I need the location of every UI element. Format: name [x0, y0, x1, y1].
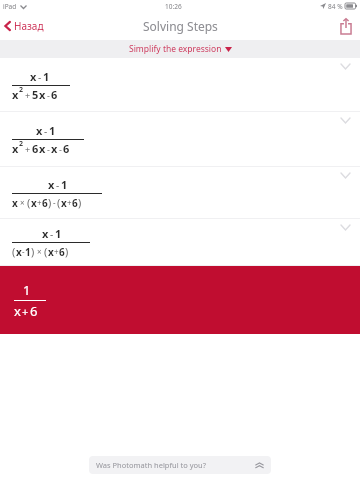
staticText: x: [48, 177, 55, 192]
staticText: ): [48, 195, 52, 210]
staticText: Назад: [14, 19, 44, 33]
staticText: (: [12, 244, 16, 259]
staticText: -: [47, 143, 50, 155]
staticText: +: [67, 197, 72, 208]
staticText: x: [14, 302, 21, 320]
staticText: ): [65, 244, 69, 259]
button[interactable]: Share: [332, 14, 360, 38]
staticText: 1: [25, 245, 31, 259]
staticText: -: [22, 246, 25, 257]
staticText: 10:26: [165, 2, 182, 11]
staticText: (: [57, 195, 61, 210]
staticText: 6: [32, 141, 39, 156]
button[interactable]: x: [0, 112, 360, 167]
staticText: (: [27, 195, 31, 210]
button[interactable]: Simplify the expression: [0, 40, 360, 58]
button[interactable]: x: [0, 58, 360, 112]
staticText: x: [36, 123, 43, 138]
staticText: 1: [61, 177, 68, 192]
staticText: x: [16, 245, 22, 259]
staticText: +: [54, 246, 59, 257]
staticText: x: [39, 87, 46, 102]
button[interactable]: x: [0, 167, 360, 219]
staticText: 6: [42, 196, 48, 210]
button[interactable]: x: [0, 219, 360, 266]
staticText: (: [44, 244, 48, 259]
staticText: +: [25, 89, 31, 101]
staticText: 6: [59, 245, 65, 259]
staticText: 6: [51, 87, 58, 102]
staticText: x: [30, 69, 37, 84]
staticText: iPad: [3, 2, 17, 11]
staticText: 2: [19, 85, 24, 95]
staticText: -: [44, 124, 48, 138]
staticText: 6: [30, 302, 38, 320]
button[interactable]: Expand step: [341, 118, 350, 123]
staticText: -: [47, 89, 50, 101]
staticText: 84 %: [328, 2, 343, 11]
staticText: 2: [19, 139, 24, 149]
staticText: x: [12, 87, 19, 102]
staticText: ×: [20, 197, 25, 208]
staticText: x: [51, 141, 58, 156]
staticText: -: [53, 197, 56, 208]
staticText: -: [50, 227, 54, 241]
staticText: Simplify the expression: [129, 43, 222, 55]
button[interactable]: Назад: [0, 15, 52, 37]
staticText: Solving Steps: [143, 18, 218, 34]
staticText: 1: [55, 226, 62, 241]
staticText: 1: [43, 69, 50, 84]
staticText: -: [38, 70, 42, 84]
staticText: 1: [23, 281, 31, 299]
staticText: ×: [37, 246, 42, 257]
staticText: +: [22, 304, 29, 319]
staticText: ): [78, 195, 82, 210]
button[interactable]: 1: [0, 266, 360, 334]
button[interactable]: Expand step: [341, 64, 350, 69]
staticText: x: [12, 196, 18, 210]
staticText: x: [61, 196, 67, 210]
staticText: x: [31, 196, 37, 210]
staticText: -: [56, 178, 60, 192]
staticText: 6: [72, 196, 78, 210]
staticText: 1: [49, 123, 56, 138]
staticText: 5: [32, 87, 39, 102]
staticText: x: [39, 141, 46, 156]
staticText: Was Photomath helpful to you?: [96, 460, 207, 470]
button[interactable]: Expand step: [341, 225, 350, 230]
staticText: x: [42, 226, 49, 241]
staticText: +: [37, 197, 42, 208]
button[interactable]: Expand step: [341, 173, 350, 178]
staticText: 6: [63, 141, 70, 156]
staticText: -: [59, 143, 62, 155]
staticText: +: [25, 143, 31, 155]
staticText: ): [31, 244, 35, 259]
button[interactable]: Was Photomath helpful to you?: [89, 456, 271, 474]
staticText: x: [48, 245, 54, 259]
staticText: x: [12, 141, 19, 156]
